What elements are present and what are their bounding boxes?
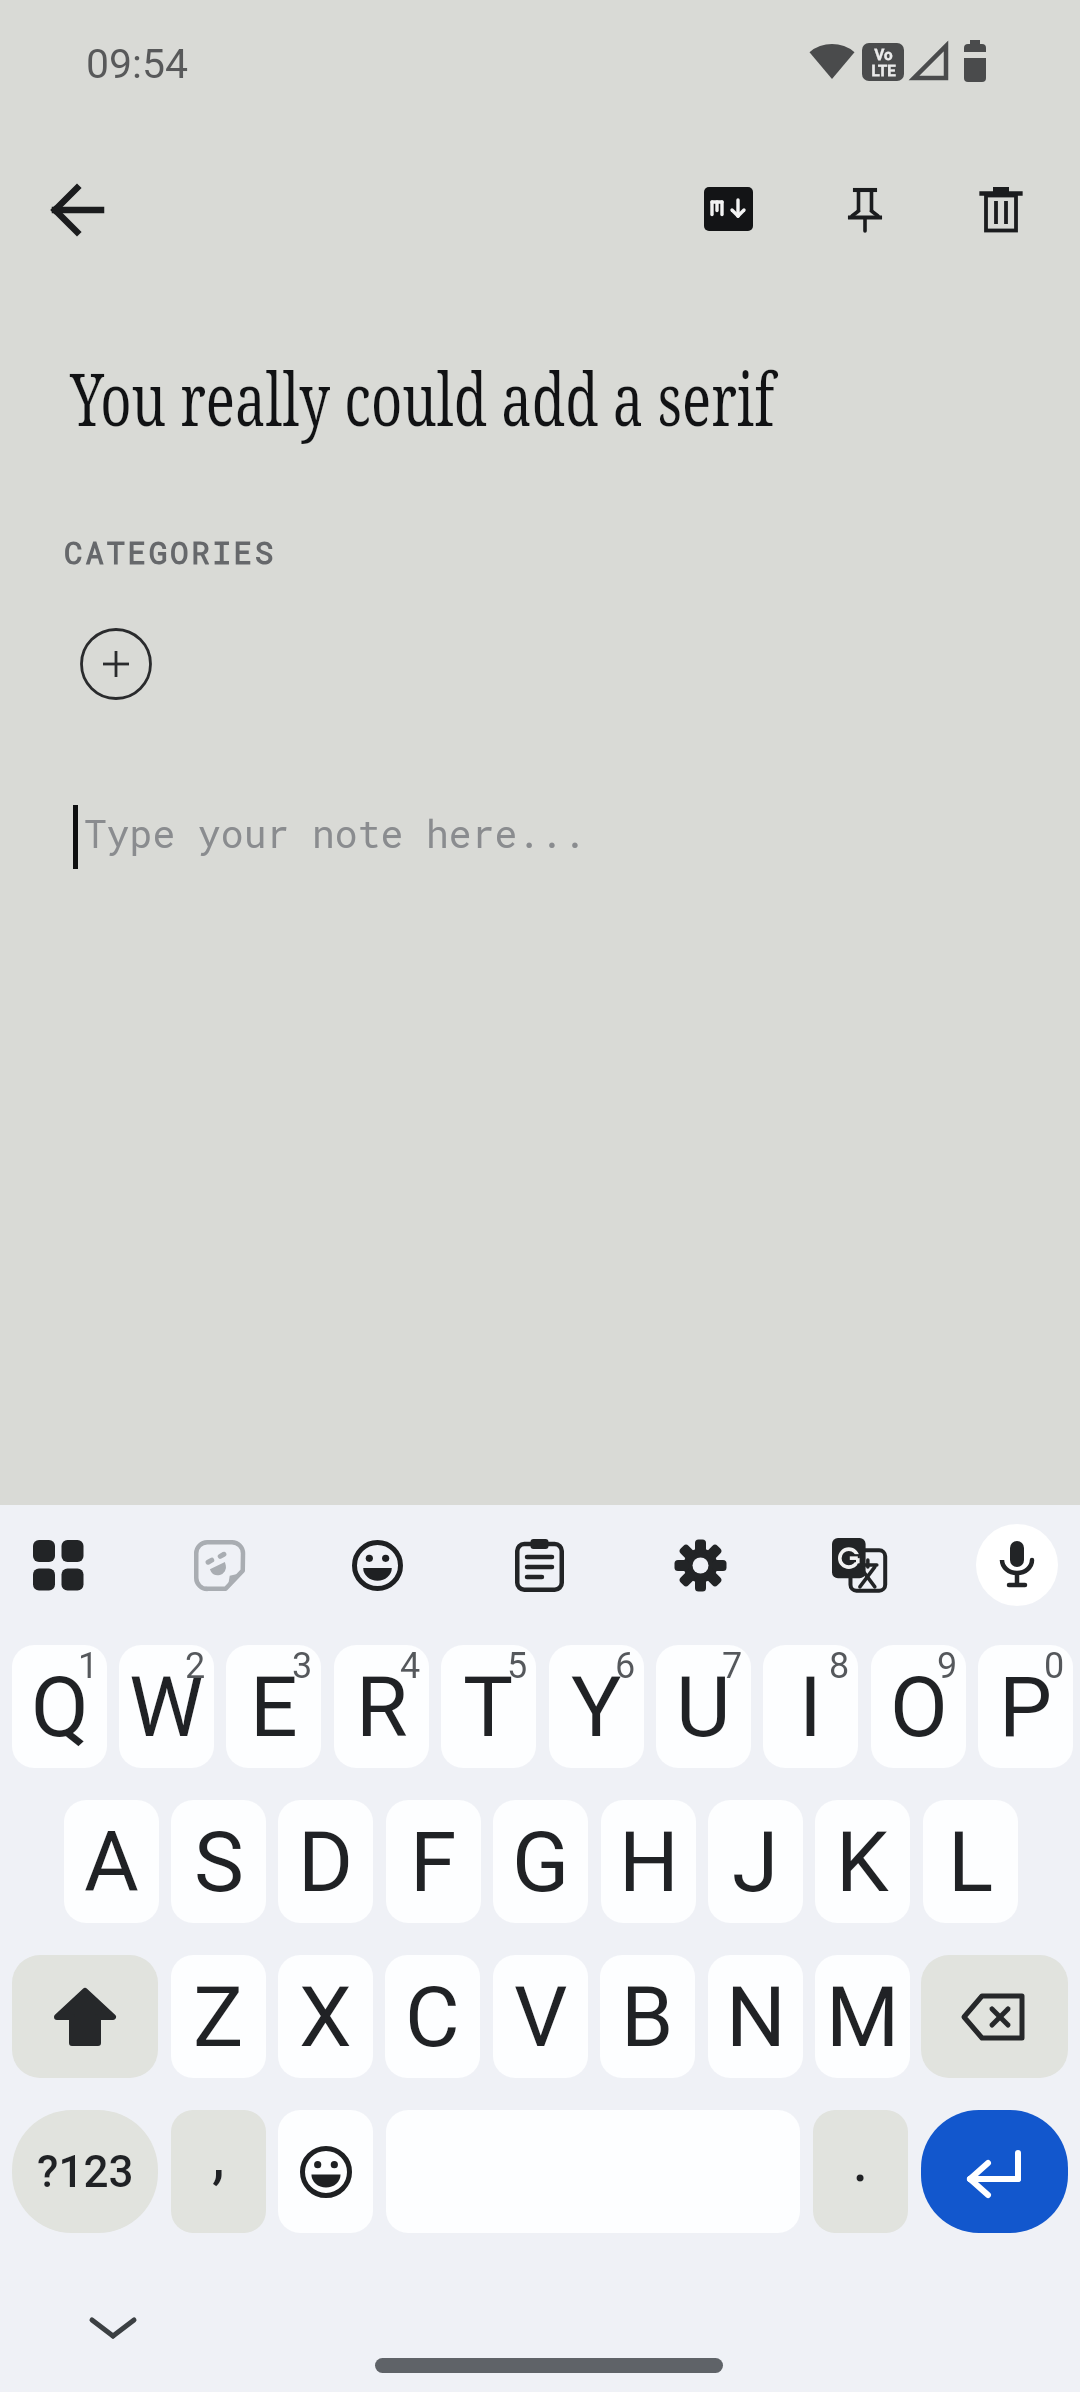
staticText: U: [676, 1658, 731, 1756]
button[interactable]: I: [763, 1645, 858, 1768]
staticText: A: [84, 1813, 139, 1911]
button[interactable]: O: [871, 1645, 966, 1768]
staticText: N: [726, 1968, 786, 2066]
staticText: B: [621, 1968, 674, 2066]
staticText: You really could add a serif: [70, 348, 775, 447]
staticText: ,: [212, 2118, 225, 2193]
staticText: 3: [292, 1645, 313, 1687]
staticText: D: [298, 1813, 354, 1911]
button[interactable]: [515, 1538, 564, 1592]
staticText: CATEGORIES: [64, 532, 277, 573]
button[interactable]: L: [923, 1800, 1018, 1923]
button[interactable]: S: [171, 1800, 266, 1923]
staticText: Z: [193, 1968, 244, 2066]
button[interactable]: F: [386, 1800, 481, 1923]
staticText: O: [890, 1658, 948, 1756]
button[interactable]: T: [441, 1645, 536, 1768]
button[interactable]: K: [815, 1800, 910, 1923]
button[interactable]: P: [978, 1645, 1073, 1768]
button[interactable]: R: [334, 1645, 429, 1768]
staticText: K: [836, 1813, 889, 1911]
staticText: 7: [722, 1645, 743, 1687]
button[interactable]: [88, 2312, 138, 2344]
staticText: W: [129, 1658, 204, 1756]
staticText: 1: [78, 1645, 99, 1687]
staticText: H: [619, 1813, 679, 1911]
staticText: 0: [1044, 1645, 1065, 1687]
button[interactable]: V: [493, 1955, 588, 2078]
staticText: Y: [571, 1658, 622, 1756]
button[interactable]: [981, 187, 1021, 232]
staticText: ?123: [37, 2146, 134, 2198]
button[interactable]: ,: [171, 2110, 266, 2233]
button[interactable]: [33, 1540, 84, 1591]
staticText: J: [732, 1813, 779, 1911]
button[interactable]: W: [119, 1645, 214, 1768]
button[interactable]: [50, 181, 108, 239]
button[interactable]: [80, 628, 152, 700]
button[interactable]: M: [815, 1955, 910, 2078]
staticText: E: [250, 1658, 298, 1756]
button[interactable]: U: [656, 1645, 751, 1768]
staticText: G: [512, 1813, 570, 1911]
button[interactable]: G: [493, 1800, 588, 1923]
button[interactable]: [921, 2110, 1068, 2233]
button[interactable]: Y: [549, 1645, 644, 1768]
staticText: R: [356, 1658, 408, 1756]
button[interactable]: B: [600, 1955, 695, 2078]
button[interactable]: [674, 1538, 727, 1593]
staticText: M: [826, 1968, 900, 2066]
staticText: .: [852, 2122, 869, 2197]
button[interactable]: J: [708, 1800, 803, 1923]
button[interactable]: D: [278, 1800, 373, 1923]
button[interactable]: X: [278, 1955, 373, 2078]
button[interactable]: .: [813, 2110, 908, 2233]
staticText: P: [999, 1658, 1052, 1756]
staticText: 4: [400, 1645, 421, 1687]
staticText: V: [514, 1968, 568, 2066]
staticText: 9: [937, 1645, 958, 1687]
staticText: T: [463, 1658, 514, 1756]
button[interactable]: [704, 187, 753, 231]
staticText: C: [405, 1968, 460, 2066]
staticText: S: [194, 1813, 244, 1911]
staticText: 09:54: [86, 40, 189, 88]
button[interactable]: A: [64, 1800, 159, 1923]
button[interactable]: ?123: [12, 2110, 158, 2233]
button[interactable]: [278, 2110, 373, 2233]
button[interactable]: [194, 1540, 245, 1591]
button[interactable]: E: [226, 1645, 321, 1768]
button[interactable]: H: [601, 1800, 696, 1923]
button[interactable]: [12, 1955, 158, 2078]
button[interactable]: [921, 1955, 1068, 2078]
button[interactable]: [848, 187, 882, 233]
staticText: I: [799, 1658, 822, 1756]
staticText: 5: [507, 1645, 528, 1687]
staticText: 6: [615, 1645, 636, 1687]
staticText: Type your note here...: [84, 808, 586, 858]
staticText: 8: [829, 1645, 850, 1687]
staticText: X: [299, 1968, 352, 2066]
button[interactable]: [832, 1538, 888, 1594]
staticText: 2: [185, 1645, 206, 1687]
staticText: Vo LTE: [871, 46, 896, 79]
button[interactable]: [352, 1540, 403, 1591]
button[interactable]: N: [708, 1955, 803, 2078]
button[interactable]: C: [385, 1955, 480, 2078]
staticText: L: [948, 1813, 994, 1911]
button[interactable]: [976, 1524, 1058, 1606]
staticText: Q: [31, 1658, 89, 1756]
button[interactable]: Z: [171, 1955, 266, 2078]
button[interactable]: Q: [12, 1645, 107, 1768]
staticText: F: [410, 1813, 457, 1911]
